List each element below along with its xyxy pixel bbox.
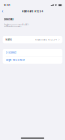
staticText: Disconnect — [5, 51, 16, 54]
staticText: Forget This Device — [5, 59, 24, 61]
button[interactable]: Forget This Device — [3, 56, 62, 64]
staticText: Name — [5, 38, 11, 41]
button[interactable]: Back — [0, 8, 5, 14]
staticText: Using this accessory may affect Wi-Fi an… — [3, 24, 28, 27]
button[interactable]: Disconnect — [3, 49, 62, 56]
staticText: 9:41 — [4, 4, 10, 7]
staticText: Connectivity — [3, 18, 13, 21]
staticText: Keyboard K1234 — [21, 10, 43, 13]
button[interactable]: Name — [3, 36, 62, 43]
staticText: Keyboard K1234 — [35, 38, 57, 41]
